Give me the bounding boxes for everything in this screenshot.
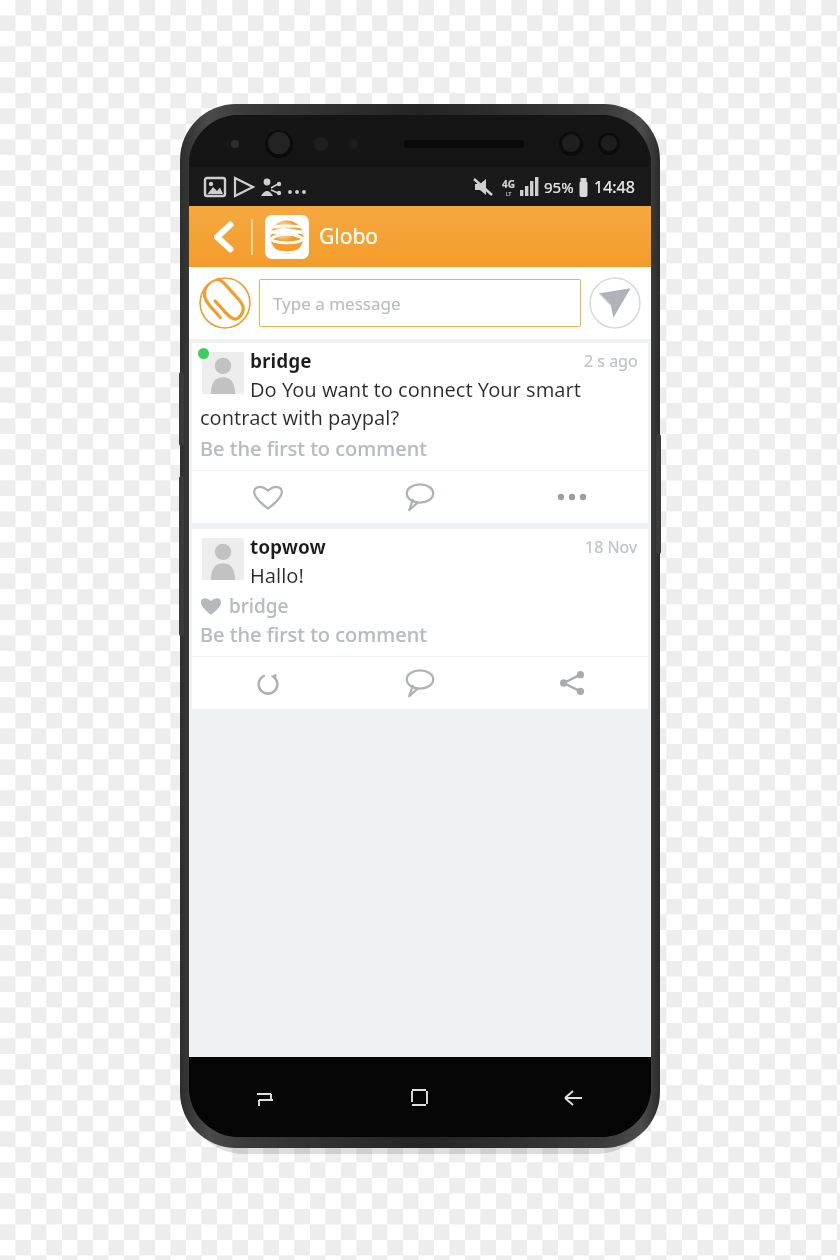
- button[interactable]: Type a message: [259, 279, 581, 327]
- staticText: 95%: [544, 177, 574, 197]
- button[interactable]: Attach file: [199, 277, 251, 329]
- staticText: 14:48: [594, 176, 635, 198]
- button[interactable]: Back: [551, 1075, 597, 1121]
- button[interactable]: topwow: [192, 529, 648, 709]
- button[interactable]: bridge: [192, 343, 648, 523]
- staticText: bridge: [250, 348, 312, 374]
- button[interactable]: Like: [192, 471, 344, 523]
- staticText: Be the first to comment: [200, 621, 427, 648]
- button[interactable]: Globo logo: [265, 215, 309, 259]
- staticText: Be the first to comment: [200, 435, 427, 462]
- button[interactable]: Send message: [589, 277, 641, 329]
- staticText: topwow: [250, 534, 326, 560]
- button[interactable]: Back: [203, 212, 245, 262]
- button[interactable]: More options: [496, 471, 648, 523]
- button[interactable]: Comment: [344, 471, 496, 523]
- staticText: 18 Nov: [585, 536, 638, 558]
- staticText: bridge: [229, 593, 289, 619]
- staticText: contract with paypal?: [200, 404, 400, 431]
- staticText: Do You want to connect Your smart: [250, 376, 582, 403]
- staticText: 2 s ago: [584, 350, 638, 372]
- staticText: Type a message: [273, 292, 401, 315]
- staticText: LT: [506, 191, 512, 198]
- button[interactable]: Repost: [192, 657, 344, 709]
- staticText: Globo: [319, 222, 379, 251]
- staticText: Hallo!: [250, 562, 304, 589]
- button[interactable]: Comment: [344, 657, 496, 709]
- button[interactable]: Share: [496, 657, 648, 709]
- staticText: 4G: [502, 177, 515, 191]
- button[interactable]: Home: [397, 1075, 443, 1121]
- button[interactable]: Recent apps: [243, 1075, 289, 1121]
